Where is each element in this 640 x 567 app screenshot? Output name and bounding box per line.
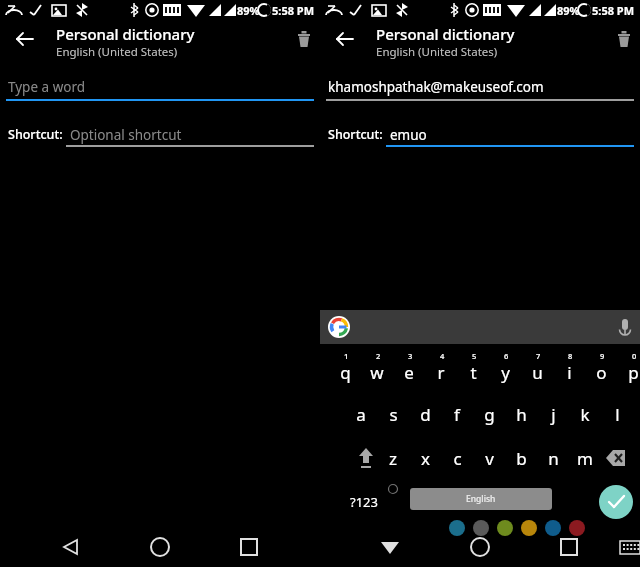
button[interactable]: y [490,358,520,386]
staticText: 1 [344,351,349,361]
staticText: h [516,403,527,426]
button[interactable]: Shift [350,444,382,472]
staticText: f [454,403,460,426]
button[interactable] [326,74,634,102]
button[interactable]: Back [328,22,362,56]
button[interactable] [386,122,634,148]
staticText: o [596,361,607,384]
staticText: 5 [472,351,477,361]
staticText: 9 [600,351,605,361]
button[interactable]: a [346,400,376,428]
staticText: b [516,447,527,470]
button[interactable]: c [442,444,472,472]
staticText: 4 [440,351,445,361]
button[interactable]: ?123 [342,490,386,514]
staticText: 3 [408,351,413,361]
button[interactable]: i [554,358,584,386]
staticText: m [577,447,593,470]
staticText: emuo [390,126,427,144]
staticText: 8 [568,351,573,361]
staticText: English (United States) [376,44,498,60]
button[interactable]: q [330,358,360,386]
staticText: g [484,403,495,426]
button[interactable]: p [618,358,640,386]
staticText: s [389,403,398,426]
staticText: Type a word [8,78,86,96]
staticText: t [470,361,477,384]
button[interactable] [66,122,314,148]
staticText: 5:58 PM [592,3,635,18]
button[interactable]: x [410,444,440,472]
button[interactable]: j [538,400,568,428]
staticText: u [532,361,543,384]
button[interactable]: Delete [288,23,320,55]
button[interactable]: Backspace [600,444,632,472]
staticText: English [466,493,496,505]
staticText: q [340,361,351,384]
staticText: y [501,361,510,384]
staticText: d [420,403,431,426]
button[interactable] [6,74,314,102]
staticText: l [615,403,620,426]
staticText: 6 [504,351,509,361]
button[interactable]: e [394,358,424,386]
button[interactable]: o [586,358,616,386]
button[interactable]: r [426,358,456,386]
button[interactable]: Back [8,22,42,56]
button[interactable]: t [458,358,488,386]
button[interactable]: Google search [328,316,350,338]
staticText: English (United States) [56,44,178,60]
staticText: i [567,361,572,384]
staticText: khamoshpathak@makeuseof.com [328,78,544,96]
button[interactable]: l [602,400,632,428]
staticText: p [628,361,639,384]
staticText: Shortcut: [328,126,383,143]
button[interactable]: g [474,400,504,428]
staticText: ?123 [350,493,378,511]
button[interactable]: w [362,358,392,386]
staticText: k [580,403,590,426]
staticText: Personal dictionary [56,24,195,44]
staticText: e [404,361,414,384]
button[interactable]: Enter [599,485,633,519]
button[interactable]: s [378,400,408,428]
staticText: Optional shortcut [70,126,182,144]
staticText: w [370,361,384,384]
staticText: 2 [376,351,381,361]
staticText: 5:58 PM [272,3,315,18]
button[interactable]: n [538,444,568,472]
button[interactable]: Voice input [614,316,636,338]
staticText: 7 [536,351,541,361]
button[interactable]: b [506,444,536,472]
staticText: z [389,447,397,470]
staticText: x [421,447,430,470]
staticText: 89% [237,3,260,18]
staticText: j [551,403,556,426]
staticText: Personal dictionary [376,24,515,44]
button[interactable]: English [410,488,552,510]
button[interactable]: u [522,358,552,386]
button[interactable]: d [410,400,440,428]
button[interactable]: h [506,400,536,428]
button[interactable]: z [378,444,408,472]
staticText: v [485,447,494,470]
button[interactable]: f [442,400,472,428]
staticText: a [356,403,366,426]
staticText: 89% [557,3,580,18]
staticText: r [437,361,445,384]
button[interactable]: Delete [608,23,640,55]
button[interactable]: k [570,400,600,428]
staticText: n [548,447,559,470]
staticText: 0 [632,351,637,361]
button[interactable]: v [474,444,504,472]
staticText: c [453,447,462,470]
staticText: Shortcut: [8,126,63,143]
button[interactable]: m [570,444,600,472]
